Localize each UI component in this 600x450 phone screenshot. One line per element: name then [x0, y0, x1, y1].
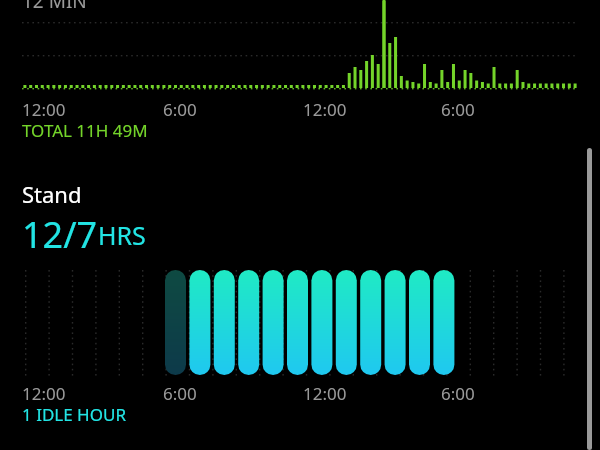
button[interactable]: Activity charts: Move and Stand: [0, 0, 600, 450]
other: Activity charts: Move and Stand: [0, 0, 600, 450]
